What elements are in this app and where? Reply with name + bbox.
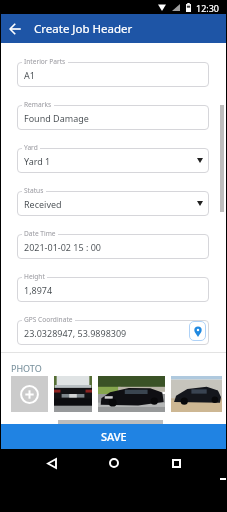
staticText: 23.0328947, 53.9898309 [24, 327, 127, 339]
button[interactable]: 1,8974 [17, 277, 209, 302]
staticText: Interior Parts [24, 57, 66, 66]
button[interactable]: Photo [171, 376, 222, 412]
button[interactable]: Yard 1 [17, 148, 209, 173]
button[interactable]: Photo [98, 376, 165, 412]
staticText: PHOTO [11, 362, 42, 374]
staticText: Create Job Header [34, 21, 133, 37]
staticText: Received [24, 198, 62, 210]
staticText: Yard 1 [24, 155, 51, 167]
button[interactable]: Received [17, 191, 209, 216]
staticText: Yard [24, 143, 38, 152]
staticText: 12:30 [196, 2, 220, 14]
staticText: GPS Coordinate [24, 315, 73, 324]
button[interactable]: Found Damage [17, 105, 209, 130]
button[interactable]: 23.0328947, 53.9898309 [17, 320, 209, 345]
staticText: Remarks [24, 100, 52, 109]
button[interactable]: Recents [158, 449, 194, 477]
button[interactable]: Back [34, 449, 70, 477]
button[interactable]: 2021-01-02 15 : 00 [17, 234, 209, 259]
staticText: 1,8974 [24, 284, 53, 296]
button[interactable]: A1 [17, 62, 209, 87]
button[interactable]: Get location [189, 321, 206, 341]
staticText: 2021-01-02 15 : 00 [24, 241, 102, 253]
staticText: A1 [24, 69, 35, 81]
button[interactable]: Back [0, 14, 29, 43]
button[interactable]: SAVE [0, 424, 227, 449]
staticText: SAVE [101, 429, 127, 444]
staticText: Height [24, 272, 45, 281]
staticText: Found Damage [24, 112, 89, 124]
button[interactable]: Home [96, 449, 132, 477]
staticText: Date Time [24, 229, 56, 238]
button[interactable]: Add photo [11, 376, 48, 412]
staticText: Status [24, 186, 44, 195]
button[interactable]: Photo [54, 376, 92, 412]
